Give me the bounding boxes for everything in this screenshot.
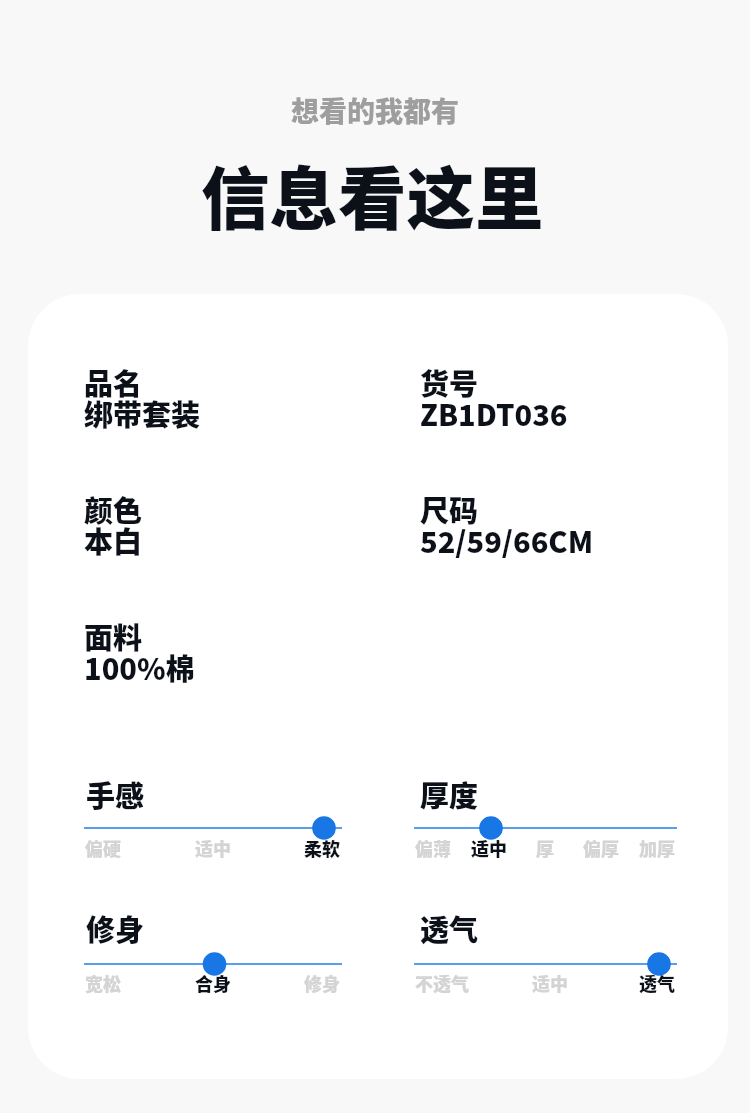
staticText: 适中 xyxy=(532,970,568,996)
button[interactable]: 手感: 柔软 xyxy=(84,814,342,842)
button[interactable]: 宽松 xyxy=(85,965,125,993)
staticText: 货号 xyxy=(420,361,479,403)
staticText: 修身 xyxy=(86,907,145,949)
button[interactable]: 适中 xyxy=(471,830,511,858)
button[interactable]: 尺码 xyxy=(420,482,720,556)
staticText: 偏硬 xyxy=(85,835,121,861)
staticText: 本白 xyxy=(84,519,143,561)
staticText: 厚度 xyxy=(420,773,479,815)
staticText: 偏厚 xyxy=(583,835,619,861)
staticText: 颜色 xyxy=(84,488,143,530)
button[interactable]: 面料 xyxy=(84,609,384,683)
staticText: 信息看这里 xyxy=(201,145,544,244)
staticText: 想看的我都有 xyxy=(291,90,460,131)
button[interactable]: 柔软 xyxy=(304,830,344,858)
staticText: 适中 xyxy=(471,835,507,861)
button[interactable]: 透气: 透气 xyxy=(414,950,677,978)
staticText: 52/59/66CM xyxy=(420,519,594,561)
staticText: 透气 xyxy=(420,907,479,949)
button[interactable]: 颜色 xyxy=(84,482,384,556)
button[interactable]: 透气 xyxy=(639,965,679,993)
button[interactable]: 修身 xyxy=(304,965,344,993)
staticText: 合身 xyxy=(195,970,231,996)
staticText: 加厚 xyxy=(639,835,675,861)
staticText: 绑带套装 xyxy=(84,392,201,434)
button[interactable]: 不透气 xyxy=(415,965,473,993)
staticText: 100%棉 xyxy=(84,646,195,688)
button[interactable]: 偏薄 xyxy=(415,830,455,858)
staticText: 厚 xyxy=(536,835,554,861)
button[interactable]: 修身: 合身 xyxy=(84,950,342,978)
button[interactable]: 偏硬 xyxy=(85,830,125,858)
staticText: 柔软 xyxy=(304,835,340,861)
button[interactable]: 偏厚 xyxy=(583,830,623,858)
staticText: 尺码 xyxy=(420,488,479,530)
staticText: 适中 xyxy=(195,835,231,861)
button[interactable]: 厚 xyxy=(536,830,558,858)
staticText: 透气 xyxy=(639,970,675,996)
button[interactable]: 合身 xyxy=(195,965,235,993)
button[interactable]: 加厚 xyxy=(639,830,679,858)
staticText: 面料 xyxy=(84,615,143,657)
staticText: 手感 xyxy=(86,773,145,815)
staticText: 偏薄 xyxy=(415,835,451,861)
staticText: 宽松 xyxy=(85,970,121,996)
button[interactable]: 货号 xyxy=(420,355,720,429)
button[interactable]: 适中 xyxy=(532,965,572,993)
staticText: 不透气 xyxy=(415,970,469,996)
button[interactable]: 品名 xyxy=(84,355,384,429)
staticText: ZB1DT036 xyxy=(420,392,568,434)
button[interactable]: 适中 xyxy=(195,830,235,858)
staticText: 修身 xyxy=(304,970,340,996)
staticText: 品名 xyxy=(84,361,143,403)
button[interactable]: 厚度: 适中 xyxy=(414,814,677,842)
